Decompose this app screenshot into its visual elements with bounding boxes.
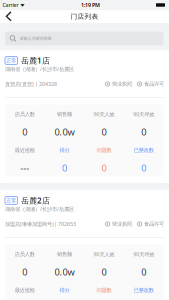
- staticText: 门店列表: [70, 12, 98, 21]
- staticText: ---: [20, 162, 29, 174]
- staticText: 0: [22, 126, 27, 138]
- button[interactable]: Back: [0, 10, 25, 23]
- staticText: 90天坪效: [133, 111, 154, 118]
- staticText: 1:19 PM: [81, 1, 100, 9]
- staticText: 湖南省（湖湘）/长沙市/岳麓区: [5, 205, 74, 213]
- staticText: 已整改数: [134, 147, 154, 154]
- staticText: 正常: [6, 197, 16, 204]
- staticText: 得分: [59, 147, 69, 154]
- staticText: 岳麓2店: [21, 195, 50, 206]
- staticText: 问题数: [97, 287, 112, 294]
- staticText: 得分: [59, 287, 69, 294]
- button[interactable]: 正常: [0, 190, 169, 300]
- staticText: Carrier: [3, 1, 19, 9]
- staticText: 已整改数: [134, 287, 154, 294]
- staticText: 0: [22, 266, 27, 278]
- staticText: 90天坪效: [133, 251, 154, 258]
- staticText: 食品许可: [144, 221, 164, 227]
- staticText: 岳麓1店: [21, 55, 50, 66]
- staticText: 0: [102, 162, 107, 174]
- staticText: 营业执照: [112, 221, 132, 227]
- staticText: 0: [102, 126, 107, 138]
- staticText: 最近巡检: [15, 287, 35, 294]
- staticText: 0: [141, 126, 146, 138]
- staticText: 90天人效: [94, 251, 115, 258]
- staticText: 食品许可: [144, 81, 164, 87]
- staticText: 直营店(直营) | 204328: [5, 80, 57, 88]
- staticText: 正常: [6, 57, 16, 64]
- staticText: 0: [102, 266, 107, 278]
- staticText: 0: [141, 162, 146, 174]
- staticText: 请输入关键词搜索: [20, 36, 52, 41]
- staticText: 店员人数: [15, 251, 35, 258]
- staticText: 店员人数: [15, 111, 35, 118]
- staticText: 湖南省（湖湘）/长沙市/岳麓区: [5, 65, 74, 73]
- staticText: 0.0w: [54, 266, 74, 278]
- staticText: 最近巡检: [15, 147, 35, 154]
- staticText: 90天人效: [94, 111, 115, 118]
- staticText: 问题数: [97, 147, 112, 154]
- button[interactable]: 正常: [0, 50, 169, 183]
- staticText: 0: [141, 266, 146, 278]
- staticText: 加盟店(琳琳加盟商号)| 702653: [5, 220, 76, 228]
- staticText: 销售额: [57, 251, 72, 258]
- staticText: 0: [62, 162, 67, 174]
- button[interactable]: 请输入关键词搜索: [0, 28, 169, 45]
- staticText: 营业执照: [112, 81, 132, 87]
- staticText: 0.0w: [54, 126, 74, 138]
- staticText: 销售额: [57, 111, 72, 118]
